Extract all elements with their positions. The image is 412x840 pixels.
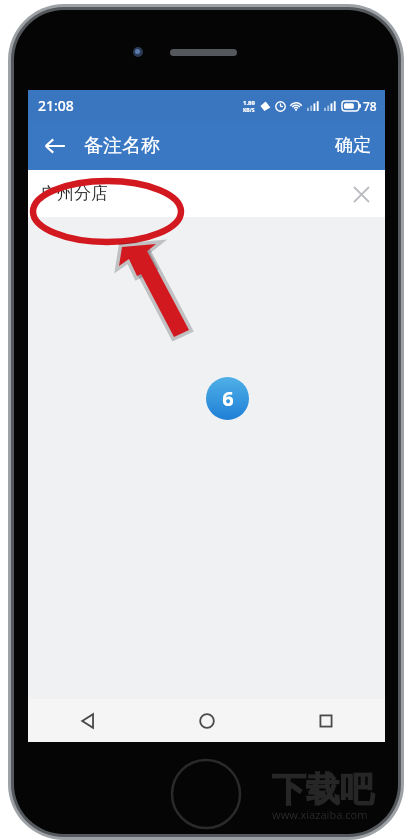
button[interactable]: Back [28, 699, 147, 742]
button[interactable]: Home [147, 699, 266, 742]
staticText: 确定 [335, 134, 371, 157]
staticText: 6 [222, 385, 234, 412]
button[interactable]: 确定 [321, 126, 385, 165]
staticText: 21:08 [38, 96, 74, 115]
staticText: 广州分店 [40, 183, 108, 204]
staticText: 备注名称 [84, 134, 160, 158]
staticText: 下载吧 [272, 768, 374, 811]
button[interactable]: 广州分店 [28, 170, 385, 217]
button[interactable]: Recents [266, 699, 385, 742]
staticText: www.xiazaiba.com [272, 807, 368, 822]
staticText: 1.89 [243, 99, 255, 107]
button[interactable]: Clear text [343, 176, 379, 212]
button[interactable]: Back [34, 125, 76, 167]
staticText: 78 [363, 98, 377, 114]
staticText: KB/S [243, 107, 255, 114]
